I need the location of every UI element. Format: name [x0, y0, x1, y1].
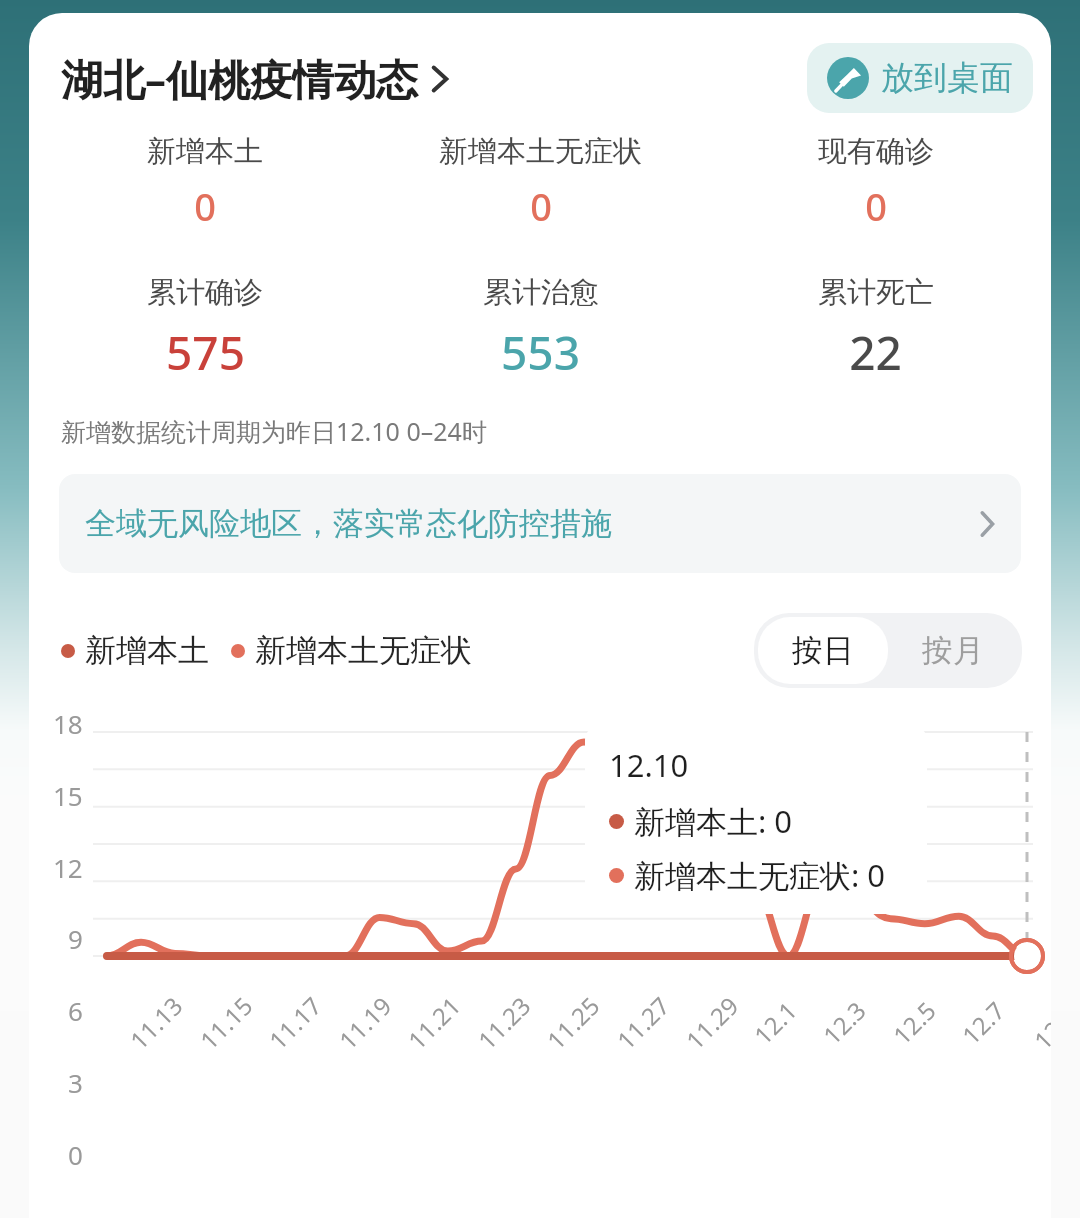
staticText: 18: [53, 706, 83, 741]
button[interactable]: 累计治愈: [373, 274, 708, 384]
staticText: 12.7: [954, 994, 1012, 1051]
staticText: 新增本土无症状: [439, 133, 642, 170]
button[interactable]: 现有确诊: [708, 133, 1043, 232]
staticText: 新增本土: 0: [634, 800, 793, 842]
staticText: 全域无风险地区，落实常态化防控措施: [85, 504, 612, 543]
button[interactable]: 按月: [888, 617, 1018, 684]
button[interactable]: 累计确诊: [37, 274, 373, 384]
button[interactable]: 湖北–仙桃疫情动态: [61, 46, 449, 111]
staticText: 放到桌面: [881, 57, 1013, 99]
button[interactable]: 按日: [758, 617, 888, 684]
button[interactable]: 新增本土无症状: [373, 133, 708, 232]
staticText: 按日: [792, 631, 854, 670]
staticText: 新增本土无症状: [255, 631, 472, 670]
staticText: 12.10: [1026, 989, 1051, 1056]
staticText: 9: [68, 921, 83, 956]
staticText: 现有确诊: [818, 133, 934, 170]
staticText: 11.23: [470, 989, 538, 1056]
staticText: 6: [68, 993, 83, 1028]
staticText: 11.19: [331, 989, 399, 1056]
button[interactable]: 累计死亡: [708, 274, 1043, 384]
staticText: 11.25: [539, 989, 607, 1056]
staticText: 3: [68, 1065, 83, 1100]
button[interactable]: 全域无风险地区，落实常态化防控措施: [59, 474, 1021, 573]
staticText: 12.5: [885, 994, 943, 1051]
staticText: 12.3: [815, 994, 873, 1051]
staticText: 22: [849, 321, 902, 384]
staticText: 0: [68, 1137, 83, 1172]
staticText: 11.21: [400, 989, 468, 1056]
staticText: 按月: [922, 631, 984, 670]
staticText: 0: [530, 180, 552, 232]
staticText: 累计治愈: [483, 274, 599, 311]
staticText: 11.13: [122, 989, 190, 1056]
staticText: 湖北–仙桃疫情动态: [61, 50, 419, 107]
staticText: 累计确诊: [147, 274, 263, 311]
staticText: 15: [53, 778, 83, 813]
staticText: 新增本土: [85, 631, 209, 670]
staticText: 553: [501, 321, 580, 384]
staticText: 12.1: [746, 994, 804, 1051]
staticText: 0: [865, 180, 887, 232]
staticText: 累计死亡: [818, 274, 934, 311]
staticText: 新增数据统计周期为昨日12.10 0–24时: [61, 414, 487, 448]
staticText: 575: [166, 321, 245, 384]
staticText: 12.10: [609, 744, 689, 786]
staticText: 11.29: [678, 989, 746, 1056]
staticText: 新增本土: [147, 133, 263, 170]
staticText: 12: [53, 850, 83, 885]
staticText: 11.15: [192, 989, 260, 1056]
staticText: 新增本土无症状: 0: [634, 854, 886, 896]
staticText: 0: [194, 180, 216, 232]
button[interactable]: 放到桌面: [807, 43, 1033, 113]
staticText: 11.17: [261, 989, 329, 1056]
staticText: 11.27: [609, 989, 677, 1056]
button[interactable]: 新增本土: [37, 133, 373, 232]
